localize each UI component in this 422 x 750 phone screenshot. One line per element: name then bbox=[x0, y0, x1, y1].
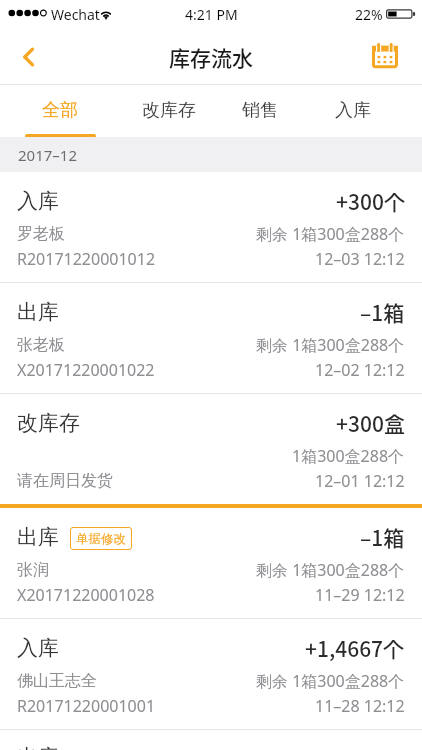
staticText: 单据修改 bbox=[76, 531, 126, 547]
staticText: 出库 bbox=[17, 299, 59, 325]
staticText: 剩余 1箱300盒288个 bbox=[256, 223, 405, 245]
staticText: 改库存 bbox=[17, 410, 80, 436]
staticText: +300盒 bbox=[336, 408, 405, 438]
staticText: 全部 bbox=[42, 99, 78, 122]
button[interactable]: 出库 bbox=[0, 508, 422, 619]
staticText: 张润 bbox=[17, 560, 49, 580]
staticText: 剩余 1箱300盒288个 bbox=[256, 334, 405, 356]
staticText: 11–28 12:12 bbox=[315, 695, 405, 717]
staticText: X20171220001028 bbox=[17, 584, 155, 606]
staticText: X20171220001022 bbox=[17, 359, 155, 381]
staticText: +300个 bbox=[336, 186, 405, 216]
staticText: 入库 bbox=[17, 635, 59, 661]
button[interactable]: 全部 bbox=[0, 85, 271, 137]
staticText: 销售 bbox=[242, 99, 278, 122]
staticText: 请在周日发货 bbox=[17, 471, 113, 491]
staticText: Wechat bbox=[51, 5, 100, 24]
staticText: 11–29 12:12 bbox=[315, 584, 405, 606]
staticText: 改库存 bbox=[142, 99, 196, 122]
staticText: 12–01 12:12 bbox=[315, 470, 405, 492]
button[interactable]: 改库存 bbox=[0, 85, 380, 137]
staticText: +1,4667个 bbox=[305, 633, 405, 663]
staticText: 罗老板 bbox=[17, 224, 65, 244]
button[interactable]: 销售 bbox=[49, 85, 422, 137]
staticText: 剩余 1箱300盒288个 bbox=[256, 559, 405, 581]
button[interactable]: Calendar bbox=[358, 30, 408, 84]
staticText: 入库 bbox=[335, 99, 371, 122]
staticText: 入库 bbox=[17, 188, 59, 214]
staticText: 出库 bbox=[17, 744, 59, 750]
staticText: –1箱 bbox=[360, 297, 405, 327]
staticText: 库存流水 bbox=[169, 42, 253, 72]
staticText: 张老板 bbox=[17, 335, 65, 355]
staticText: 22% bbox=[355, 5, 383, 24]
staticText: 剩余 1箱300盒288个 bbox=[256, 670, 405, 692]
staticText: 4:21 PM bbox=[185, 5, 238, 24]
staticText: 佛山王志全 bbox=[17, 671, 97, 691]
staticText: 1箱300盒288个 bbox=[292, 445, 405, 467]
button[interactable]: 入库 bbox=[142, 85, 422, 137]
staticText: R20171220001012 bbox=[17, 248, 156, 270]
staticText: 12–03 12:12 bbox=[315, 248, 405, 270]
button[interactable]: 改库存 bbox=[0, 394, 422, 508]
button[interactable]: Back bbox=[0, 30, 52, 84]
button[interactable]: 出库 bbox=[0, 283, 422, 394]
staticText: 2017–12 bbox=[18, 145, 77, 165]
button[interactable]: 出库 bbox=[0, 730, 422, 750]
staticText: –1箱 bbox=[360, 522, 405, 552]
button[interactable]: 入库 bbox=[0, 619, 422, 730]
button[interactable]: 入库 bbox=[0, 172, 422, 283]
staticText: 出库 bbox=[17, 524, 59, 550]
staticText: R20171220001001 bbox=[17, 695, 156, 717]
staticText: 12–02 12:12 bbox=[315, 359, 405, 381]
